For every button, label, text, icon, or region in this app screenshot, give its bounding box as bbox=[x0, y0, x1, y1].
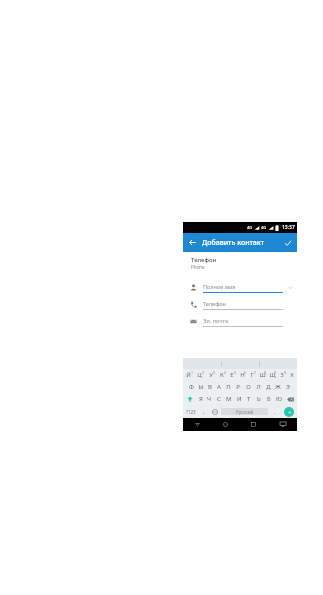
button[interactable]: Т bbox=[244, 393, 254, 405]
staticText: 7 bbox=[254, 370, 257, 375]
staticText: Ш bbox=[259, 371, 266, 379]
staticText: 8 bbox=[264, 370, 267, 375]
staticText: Т bbox=[247, 395, 251, 403]
staticText: А bbox=[217, 383, 221, 391]
staticText: Ь bbox=[257, 395, 261, 403]
staticText: Х bbox=[290, 371, 294, 379]
staticText: Ю bbox=[276, 395, 282, 403]
button[interactable]: М bbox=[224, 393, 234, 405]
staticText: Телефон bbox=[191, 256, 217, 264]
button[interactable]: Б bbox=[264, 393, 274, 405]
button[interactable]: Х bbox=[287, 369, 297, 381]
button[interactable]: Enter bbox=[280, 405, 297, 418]
button[interactable]: С bbox=[214, 393, 224, 405]
button[interactable]: Ц bbox=[194, 369, 205, 381]
staticText: 9 bbox=[274, 370, 277, 375]
button[interactable] bbox=[221, 358, 259, 369]
staticText: С bbox=[217, 395, 221, 403]
button[interactable]: ?123 bbox=[183, 405, 198, 418]
button[interactable]: Back bbox=[183, 418, 211, 431]
staticText: Л bbox=[256, 383, 261, 391]
staticText: Р bbox=[236, 383, 240, 391]
staticText: Ч bbox=[207, 395, 212, 403]
staticText: И bbox=[237, 395, 242, 403]
button[interactable]: Ч bbox=[205, 393, 214, 405]
staticText: У bbox=[209, 371, 213, 379]
staticText: 2 bbox=[202, 370, 205, 375]
button[interactable]: К bbox=[216, 369, 227, 381]
button[interactable]: А bbox=[214, 381, 223, 393]
button[interactable]: Н bbox=[237, 369, 247, 381]
button[interactable]: Ь bbox=[254, 393, 264, 405]
staticText: Phone bbox=[191, 264, 205, 270]
staticText: Ф bbox=[189, 383, 194, 391]
staticText: З bbox=[280, 371, 284, 379]
staticText: Н bbox=[240, 371, 245, 379]
button[interactable]: П bbox=[223, 381, 233, 393]
button[interactable]: Эл. почта bbox=[183, 313, 297, 330]
staticText: О bbox=[246, 383, 251, 391]
button[interactable]: Shift bbox=[183, 393, 196, 405]
button[interactable]: Л bbox=[253, 381, 263, 393]
button[interactable]: Г bbox=[247, 369, 257, 381]
staticText: Щ bbox=[269, 371, 276, 379]
staticText: 0 bbox=[284, 370, 287, 375]
staticText: Я bbox=[199, 395, 203, 403]
staticText: Полное имя bbox=[203, 283, 236, 290]
button[interactable]: Д bbox=[263, 381, 273, 393]
staticText: Г bbox=[250, 371, 254, 379]
button[interactable]: Р bbox=[233, 381, 243, 393]
button[interactable]: . bbox=[269, 405, 280, 418]
staticText: . bbox=[274, 408, 276, 416]
staticText: 13:37 bbox=[282, 224, 295, 231]
staticText: ?123 bbox=[186, 409, 196, 415]
button[interactable] bbox=[259, 358, 297, 369]
button[interactable]: Ф bbox=[187, 381, 196, 393]
button[interactable]: Ж bbox=[273, 381, 283, 393]
staticText: 5 bbox=[234, 370, 237, 375]
button[interactable]: Back bbox=[183, 233, 202, 252]
button[interactable]: И bbox=[234, 393, 244, 405]
button[interactable]: У bbox=[205, 369, 216, 381]
button[interactable]: Ю bbox=[274, 393, 284, 405]
button[interactable]: Щ bbox=[267, 369, 277, 381]
staticText: Б bbox=[267, 395, 271, 403]
staticText: 6 bbox=[244, 370, 247, 375]
button[interactable]: Home bbox=[211, 418, 239, 431]
button[interactable]: Change language bbox=[209, 405, 220, 418]
button[interactable]: , bbox=[198, 405, 209, 418]
button[interactable]: Полное имя bbox=[183, 279, 297, 296]
staticText: П bbox=[226, 383, 231, 391]
button[interactable]: Save bbox=[278, 233, 297, 252]
staticText: Э bbox=[286, 383, 290, 391]
staticText: Добавить контакт bbox=[202, 238, 265, 248]
staticText: Эл. почта bbox=[203, 317, 229, 324]
button[interactable]: Backspace bbox=[284, 393, 297, 405]
button[interactable]: Е bbox=[227, 369, 237, 381]
staticText: Е bbox=[230, 371, 234, 379]
staticText: Ц bbox=[197, 371, 202, 379]
staticText: Ж bbox=[275, 383, 281, 391]
button[interactable]: З bbox=[277, 369, 287, 381]
staticText: К bbox=[220, 371, 224, 379]
button[interactable]: Hide keyboard bbox=[268, 418, 297, 431]
button[interactable]: Й bbox=[183, 369, 194, 381]
button[interactable]: Ы bbox=[196, 381, 205, 393]
staticText: М bbox=[226, 395, 232, 403]
staticText: Ы bbox=[198, 383, 204, 391]
staticText: 3 bbox=[213, 370, 216, 375]
staticText: Д bbox=[266, 383, 271, 391]
button[interactable]: Русский bbox=[221, 408, 268, 415]
staticText: Русский bbox=[236, 409, 254, 415]
staticText: , bbox=[203, 408, 205, 416]
button[interactable]: Recent apps bbox=[239, 418, 268, 431]
button[interactable]: Я bbox=[196, 393, 205, 405]
button[interactable]: Телефон bbox=[183, 296, 297, 313]
button[interactable]: Ш bbox=[257, 369, 267, 381]
button[interactable]: В bbox=[205, 381, 214, 393]
staticText: В bbox=[208, 383, 212, 391]
staticText: 4G bbox=[261, 225, 267, 230]
button[interactable]: Э bbox=[283, 381, 293, 393]
button[interactable]: О bbox=[243, 381, 253, 393]
